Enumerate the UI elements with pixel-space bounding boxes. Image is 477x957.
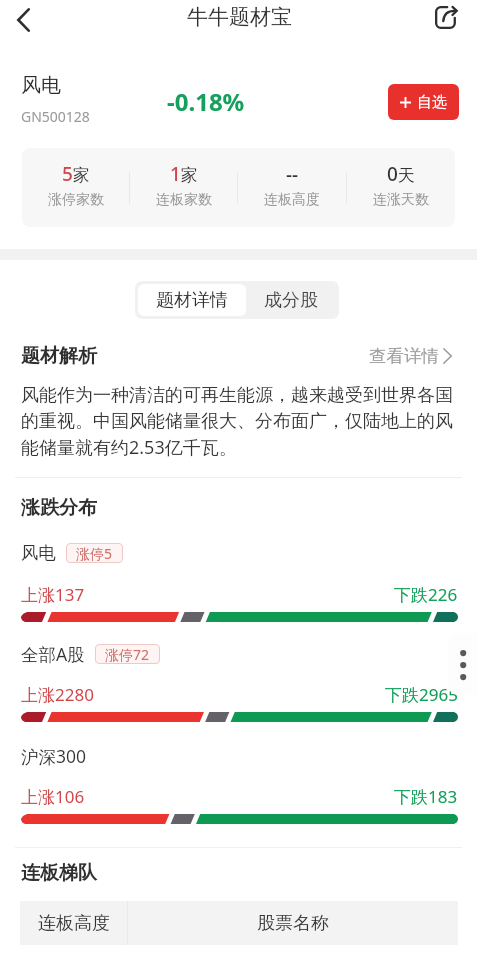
button[interactable]: 题材详情	[138, 284, 246, 316]
button[interactable]: 自选	[388, 84, 459, 120]
staticText: 自选	[417, 93, 447, 112]
staticText: 股票名称	[257, 912, 329, 935]
staticText: 全部A股	[21, 642, 85, 666]
staticText: GN500128	[21, 107, 90, 126]
staticText: 下跌2965	[385, 683, 458, 706]
staticText: 风能作为一种清洁的可再生能源，越来越受到世界各国的重视。中国风能储量很大、分布面…	[21, 384, 457, 460]
staticText: 涨停72	[105, 645, 150, 664]
button[interactable]: 查看详情	[369, 345, 452, 367]
staticText: 成分股	[264, 289, 318, 312]
staticText: 连涨天数	[373, 191, 429, 209]
staticText: 沪深300	[21, 744, 87, 768]
staticText: 涨停5	[76, 544, 113, 563]
button[interactable]: Back	[3, 0, 43, 40]
staticText: 上涨106	[21, 785, 85, 808]
button[interactable]: More options	[448, 633, 477, 695]
staticText: 连板高度	[38, 912, 110, 935]
button[interactable]: 成分股	[246, 284, 336, 316]
staticText: -0.18%	[167, 85, 245, 118]
staticText: 涨跌分布	[21, 496, 97, 520]
staticText: 下跌226	[394, 583, 458, 606]
staticText: 5家	[62, 161, 90, 187]
staticText: 上涨137	[21, 583, 85, 606]
staticText: 0天	[387, 161, 415, 187]
staticText: 风电	[21, 73, 61, 98]
button[interactable]: Share	[426, 0, 466, 37]
staticText: 下跌183	[394, 785, 458, 808]
staticText: 上涨2280	[21, 683, 94, 706]
staticText: 连板高度	[264, 191, 320, 209]
staticText: 题材解析	[21, 344, 97, 368]
staticText: 题材详情	[156, 289, 228, 312]
staticText: --	[286, 161, 299, 187]
staticText: 连板梯队	[21, 861, 97, 885]
staticText: 查看详情	[369, 345, 439, 367]
staticText: 牛牛题材宝	[187, 4, 292, 30]
staticText: 风电	[21, 542, 56, 564]
staticText: 连板家数	[156, 191, 212, 209]
staticText: 1家	[170, 161, 198, 187]
staticText: 涨停家数	[48, 191, 104, 209]
